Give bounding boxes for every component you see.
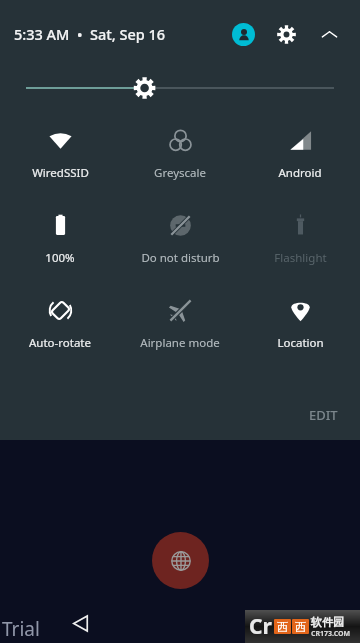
staticText: 西 xyxy=(277,620,288,634)
staticText: EDIT xyxy=(309,406,338,424)
button[interactable]: Do not disturb xyxy=(120,206,240,268)
button[interactable]: Greyscale xyxy=(120,121,240,183)
button[interactable]: Auto-rotate xyxy=(0,291,120,353)
button[interactable]: Back xyxy=(63,606,97,640)
button[interactable]: Flashlight xyxy=(240,206,360,268)
staticText: CR173.COM xyxy=(311,629,351,639)
staticText: Do not disturb xyxy=(141,250,220,266)
staticText: Auto-rotate xyxy=(29,335,91,351)
staticText: Airplane mode xyxy=(140,335,220,351)
button[interactable]: User xyxy=(226,17,260,51)
staticText: Greyscale xyxy=(154,165,206,181)
button[interactable]: Brightness xyxy=(26,71,334,105)
button[interactable]: Collapse xyxy=(312,17,346,51)
staticText: 100% xyxy=(45,250,75,266)
staticText: Flashlight xyxy=(274,250,327,266)
button[interactable]: 100% xyxy=(0,206,120,268)
staticText: 5:33 AM • Sat, Sep 16 xyxy=(14,24,166,44)
button[interactable]: Android xyxy=(240,121,360,183)
staticText: Cr xyxy=(249,612,272,641)
staticText: Android xyxy=(278,165,322,181)
button[interactable]: EDIT xyxy=(295,398,352,432)
button[interactable]: Browser xyxy=(152,532,209,589)
staticText: 软件园 xyxy=(311,615,344,629)
staticText: WiredSSID xyxy=(32,165,89,181)
staticText: 西 xyxy=(295,620,306,634)
button[interactable]: Settings xyxy=(269,17,303,51)
staticText: Location xyxy=(277,335,324,351)
button[interactable]: Airplane mode xyxy=(120,291,240,353)
button[interactable]: Location xyxy=(240,291,360,353)
staticText: Trial xyxy=(2,616,40,642)
button[interactable]: WiredSSID xyxy=(0,121,120,183)
